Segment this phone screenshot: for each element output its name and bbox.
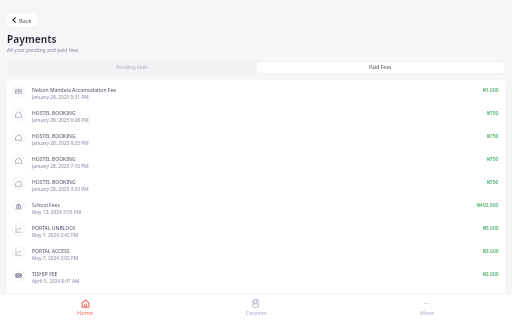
staticText: HOSTEL BOOKING — [32, 156, 76, 163]
staticText: TISHIP FEE — [32, 271, 58, 278]
staticText: More — [420, 309, 434, 317]
button[interactable]: Nelson Mandela Accomodation Fee — [7, 80, 505, 103]
staticText: Courses — [245, 309, 267, 317]
staticText: ₦750 — [487, 110, 499, 117]
staticText: School Fees — [32, 202, 60, 209]
button[interactable]: PORTAL ACCESS — [7, 241, 505, 264]
staticText: HOSTEL BOOKING — [32, 110, 76, 117]
staticText: January 28, 2025 9:31 PM — [32, 94, 89, 101]
button[interactable]: HOSTEL BOOKING — [7, 126, 505, 149]
staticText: January 28, 2025 9:28 PM — [32, 117, 89, 124]
staticText: Nelson Mandela Accomodation Fee — [32, 87, 117, 94]
staticText: January 28, 2025 9:25 PM — [32, 140, 89, 147]
button[interactable]: School Fees — [7, 195, 505, 218]
staticText: April 5, 2024 8:47 AM — [32, 278, 80, 285]
staticText: Pending Fees — [116, 64, 148, 71]
staticText: January 28, 2025 3:20 PM — [32, 186, 89, 193]
staticText: Payments — [7, 32, 57, 46]
staticText: PORTAL ACCESS — [32, 248, 70, 255]
button[interactable]: PORTAL UNBLOCK — [7, 218, 505, 241]
button[interactable]: Home — [0, 293, 170, 320]
staticText: ₦750 — [487, 133, 499, 140]
staticText: HOSTEL BOOKING — [32, 179, 76, 186]
button[interactable]: HOSTEL BOOKING — [7, 103, 505, 126]
staticText: ₦1,000 — [483, 87, 499, 94]
staticText: ₦750 — [487, 179, 499, 186]
button[interactable]: Paid Fees — [257, 62, 504, 73]
button[interactable]: HOSTEL BOOKING — [7, 149, 505, 172]
staticText: January 28, 2025 7:10 PM — [32, 163, 89, 170]
staticText: Paid Fees — [369, 64, 392, 71]
staticText: PORTAL UNBLOCK — [32, 225, 76, 232]
staticText: May 7, 2024 2:42 PM — [32, 232, 79, 239]
staticText: May 13, 2024 3:55 PM — [32, 209, 81, 216]
staticText: ₦750 — [487, 156, 499, 163]
button[interactable]: More — [341, 293, 512, 320]
button[interactable]: Courses — [170, 293, 341, 320]
staticText: All your pending and paid fees — [7, 47, 79, 54]
button[interactable]: Back — [6, 13, 38, 27]
button[interactable]: HOSTEL BOOKING — [7, 172, 505, 195]
button[interactable]: Pending Fees — [7, 61, 256, 74]
staticText: Home — [77, 309, 93, 317]
staticText: Back — [19, 17, 32, 24]
staticText: ₦5,000 — [483, 225, 499, 232]
button[interactable]: TISHIP FEE — [7, 264, 505, 287]
staticText: HOSTEL BOOKING — [32, 133, 76, 140]
staticText: ₦2,000 — [483, 271, 499, 278]
staticText: ₦3,000 — [483, 248, 499, 255]
staticText: May 7, 2024 2:02 PM — [32, 255, 79, 262]
staticText: ₦400,000 — [477, 202, 499, 209]
